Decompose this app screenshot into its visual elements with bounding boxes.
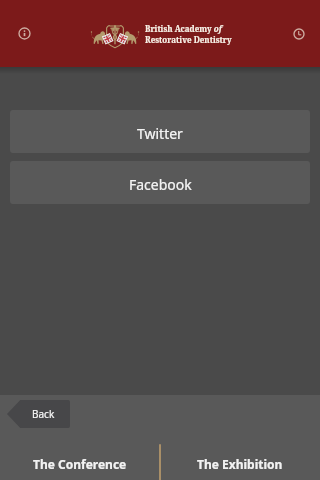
staticText: Twitter: [137, 124, 183, 143]
staticText: British Academy of: [145, 23, 222, 34]
staticText: The Conference: [33, 456, 127, 472]
button[interactable]: Information: [11, 20, 38, 47]
button[interactable]: Back: [7, 400, 70, 428]
staticText: Facebook: [129, 175, 192, 194]
button[interactable]: The Conference: [0, 443, 160, 480]
staticText: The Exhibition: [197, 456, 283, 472]
button[interactable]: Facebook: [10, 161, 310, 204]
button[interactable]: The Exhibition: [160, 443, 320, 480]
staticText: Back: [32, 407, 55, 421]
staticText: Restorative Dentistry: [145, 34, 232, 45]
button[interactable]: Schedule: [285, 20, 312, 47]
button[interactable]: Twitter: [10, 110, 310, 153]
